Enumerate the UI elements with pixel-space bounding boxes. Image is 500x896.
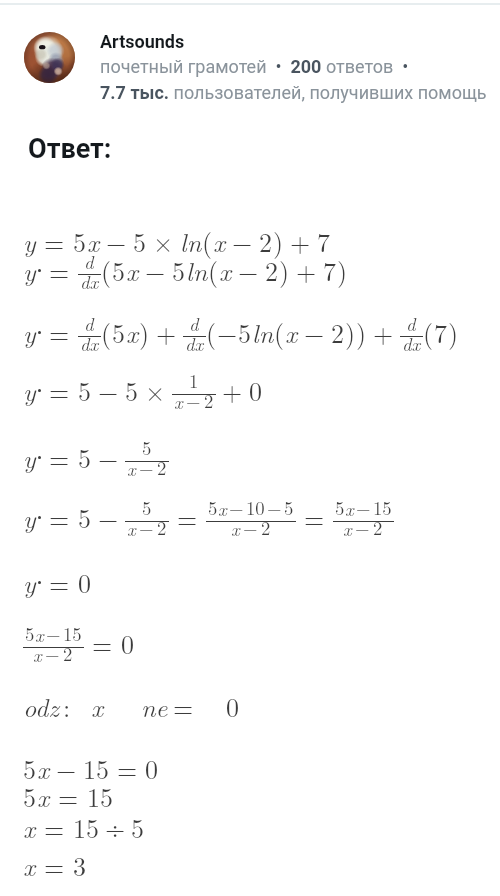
staticText: =: [117, 750, 138, 787]
staticText: dx: [80, 268, 99, 294]
staticText: =: [173, 688, 194, 725]
staticText: −: [356, 494, 371, 521]
staticText: ): [356, 314, 367, 351]
staticText: x: [35, 621, 44, 647]
staticText: ): [337, 252, 348, 289]
staticText: =: [177, 499, 198, 536]
staticText: 0: [145, 750, 159, 787]
staticText: y: [23, 252, 36, 289]
staticText: x: [218, 495, 227, 521]
staticText: 1: [189, 367, 199, 394]
staticText: y: [23, 314, 36, 351]
staticText: −: [217, 314, 238, 351]
staticText: 7.7 тыс. пользователей, получивших помощ…: [100, 82, 487, 103]
button[interactable]: Artsounds profile picture: [24, 32, 75, 83]
staticText: +: [290, 223, 311, 260]
staticText: 0: [226, 688, 240, 725]
staticText: x: [23, 809, 36, 846]
staticText: 0: [78, 564, 92, 601]
staticText: ): [279, 252, 290, 289]
staticText: почетный грамотей • 200 ответов •: [100, 56, 409, 77]
staticText: −: [139, 514, 154, 541]
staticText: x: [91, 688, 104, 725]
staticText: x: [126, 314, 139, 351]
staticText: x: [127, 455, 136, 481]
staticText: =: [44, 223, 65, 260]
staticText: ln: [186, 252, 208, 289]
staticText: =: [44, 847, 65, 884]
staticText: +: [156, 314, 177, 351]
staticText: =: [44, 809, 65, 846]
staticText: 5: [112, 252, 126, 289]
staticText: 5: [78, 499, 92, 536]
staticText: (: [423, 314, 434, 351]
staticText: =: [49, 564, 70, 601]
staticText: dx: [80, 330, 99, 356]
staticText: 15: [63, 620, 82, 647]
staticText: ln: [252, 314, 274, 351]
staticText: dx: [185, 330, 204, 356]
staticText: 5: [131, 809, 145, 846]
staticText: x: [343, 515, 352, 541]
staticText: Ответ:: [28, 133, 112, 165]
staticText: ): [273, 223, 284, 260]
staticText: =: [49, 314, 70, 351]
staticText: (: [274, 314, 285, 351]
staticText: 2: [265, 252, 279, 289]
staticText: y: [23, 564, 36, 601]
staticText: odz: [23, 688, 59, 725]
staticText: ): [448, 314, 459, 351]
staticText: 5: [238, 314, 252, 351]
staticText: 5: [125, 372, 139, 409]
staticText: x: [174, 388, 183, 414]
staticText: x: [37, 778, 50, 815]
staticText: 5: [142, 434, 152, 461]
staticText: −: [229, 494, 244, 521]
staticText: −: [45, 640, 60, 667]
staticText: 10: [246, 494, 265, 521]
staticText: Artsounds: [100, 31, 185, 52]
staticText: 0: [249, 372, 263, 409]
staticText: ln: [180, 223, 202, 260]
staticText: 5: [133, 223, 147, 260]
staticText: 5: [172, 252, 186, 289]
staticText: x: [127, 515, 136, 541]
staticText: 5: [78, 439, 92, 476]
staticText: −: [139, 454, 154, 481]
staticText: x: [285, 314, 298, 351]
staticText: =: [58, 778, 79, 815]
staticText: −: [98, 439, 119, 476]
staticText: ): [345, 314, 356, 351]
staticText: ×: [153, 223, 174, 260]
staticText: −: [243, 514, 258, 541]
staticText: 3: [73, 847, 87, 884]
staticText: ÷: [105, 809, 126, 846]
staticText: ×: [145, 372, 166, 409]
staticText: −: [186, 387, 201, 414]
staticText: −: [106, 223, 127, 260]
staticText: +: [373, 314, 394, 351]
staticText: 15: [373, 494, 392, 521]
staticText: x: [213, 223, 226, 260]
staticText: y: [23, 372, 36, 409]
staticText: −: [355, 514, 370, 541]
staticText: y: [23, 439, 36, 476]
staticText: −: [98, 372, 119, 409]
staticText: 2: [373, 514, 383, 541]
staticText: d: [406, 310, 416, 336]
staticText: 5: [284, 494, 294, 521]
staticText: 15: [87, 778, 114, 815]
staticText: x: [33, 641, 42, 667]
staticText: x: [87, 223, 100, 260]
staticText: =: [49, 499, 70, 536]
staticText: x: [23, 847, 36, 884]
staticText: 5: [208, 494, 218, 521]
staticText: =: [49, 372, 70, 409]
staticText: (: [208, 252, 219, 289]
staticText: ne: [141, 688, 168, 725]
staticText: =: [49, 439, 70, 476]
staticText: 2: [259, 223, 273, 260]
staticText: x: [126, 252, 139, 289]
staticText: (: [202, 223, 213, 260]
staticText: −: [145, 252, 166, 289]
